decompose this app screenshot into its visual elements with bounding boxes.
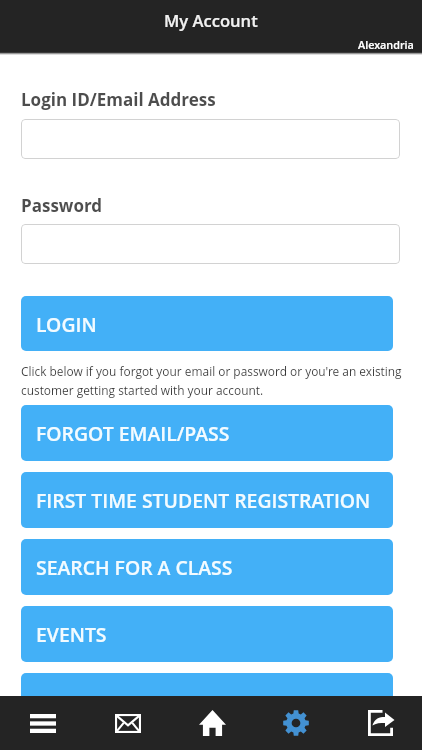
staticText: EVENTS [36, 621, 107, 647]
staticText: LOGIN [36, 311, 97, 337]
staticText: Login ID/Email Address [21, 88, 216, 111]
staticText: Password [21, 194, 103, 217]
button[interactable] [21, 224, 400, 264]
button[interactable]: Menu [0, 696, 85, 750]
button[interactable]: Messages [85, 696, 170, 750]
button[interactable]: EVENTS [21, 606, 393, 662]
button[interactable]: FIRST TIME STUDENT REGISTRATION [21, 472, 393, 528]
button[interactable]: Settings [254, 696, 338, 750]
button[interactable]: Share [338, 696, 422, 750]
staticText: My Account [164, 9, 258, 32]
button[interactable] [21, 673, 393, 729]
button[interactable]: SEARCH FOR A CLASS [21, 539, 393, 595]
staticText: FIRST TIME STUDENT REGISTRATION [36, 487, 371, 513]
staticText: Alexandria [358, 37, 414, 52]
staticText: Click below if you forgot your email or … [21, 363, 402, 398]
button[interactable]: Home [170, 696, 254, 750]
button[interactable] [21, 119, 400, 159]
button[interactable]: FORGOT EMAIL/PASS [21, 405, 393, 461]
button[interactable]: LOGIN [21, 296, 393, 351]
staticText: SEARCH FOR A CLASS [36, 554, 233, 580]
staticText: FORGOT EMAIL/PASS [36, 420, 230, 446]
